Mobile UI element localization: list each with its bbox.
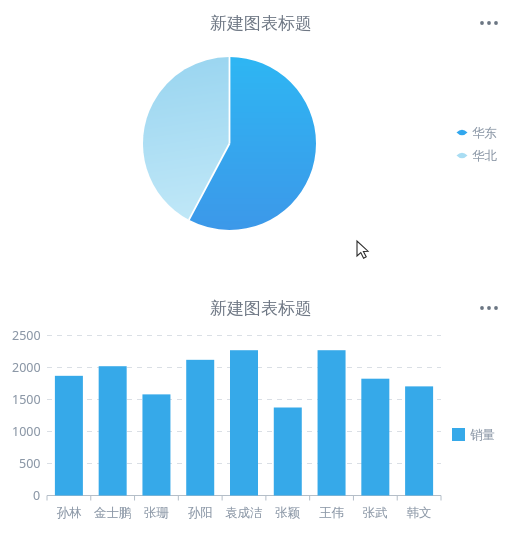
button[interactable]: Legend item 华东 (452, 123, 510, 143)
button[interactable]: Legend item 销量 (450, 425, 508, 445)
button[interactable]: More options, pie chart (470, 8, 514, 38)
button[interactable]: Legend item 华北 (452, 146, 510, 166)
button[interactable]: More options, bar chart (470, 293, 514, 323)
